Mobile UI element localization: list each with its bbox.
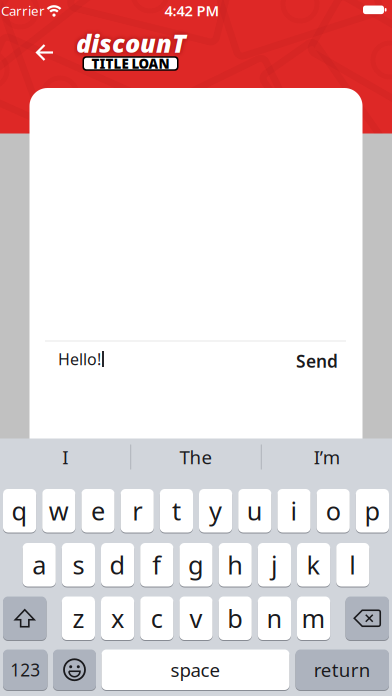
staticText: The <box>179 445 212 469</box>
staticText: k <box>307 548 321 581</box>
button[interactable]: n <box>258 596 291 640</box>
staticText: c <box>151 601 163 635</box>
staticText: m <box>302 601 326 635</box>
button[interactable]: e <box>81 489 115 532</box>
button[interactable]: v <box>179 596 213 640</box>
staticText: w <box>49 494 69 527</box>
button[interactable]: The <box>133 439 259 475</box>
staticText: I’m <box>314 445 340 469</box>
staticText: z <box>72 601 84 635</box>
button[interactable] <box>345 596 389 640</box>
staticText: TITLE LOAN <box>91 55 169 72</box>
staticText: 123 <box>10 658 40 681</box>
button[interactable]: Send <box>287 346 347 376</box>
staticText: t <box>172 494 181 527</box>
staticText: a <box>32 548 46 581</box>
staticText: u <box>247 494 263 527</box>
button[interactable] <box>53 649 96 690</box>
button[interactable]: o <box>317 489 350 532</box>
button[interactable]: f <box>140 543 173 586</box>
button[interactable]: space <box>101 649 289 690</box>
button[interactable]: h <box>219 543 252 586</box>
button[interactable]: k <box>297 543 330 586</box>
button[interactable] <box>3 596 46 640</box>
button[interactable]: u <box>238 489 271 532</box>
staticText: s <box>72 548 84 581</box>
staticText: Hello! <box>58 348 101 370</box>
staticText: b <box>227 601 243 635</box>
button[interactable]: d <box>101 543 134 586</box>
staticText: y <box>209 494 222 527</box>
button[interactable]: b <box>219 596 252 640</box>
button[interactable]: g <box>179 543 213 586</box>
staticText: v <box>189 601 202 635</box>
button[interactable]: p <box>356 489 389 532</box>
button[interactable] <box>35 44 55 60</box>
button[interactable]: i <box>277 489 311 532</box>
staticText: l <box>349 548 356 581</box>
button[interactable]: y <box>199 489 232 532</box>
staticText: i <box>290 494 297 527</box>
staticText: space <box>170 657 220 682</box>
button[interactable]: z <box>62 596 95 640</box>
button[interactable]: x <box>101 596 134 640</box>
staticText: q <box>12 494 28 527</box>
button[interactable]: l <box>336 543 369 586</box>
button[interactable]: I’m <box>264 439 390 475</box>
staticText: d <box>110 548 126 581</box>
button[interactable]: I <box>2 439 128 475</box>
staticText: o <box>326 494 341 527</box>
staticText: h <box>227 548 243 581</box>
staticText: Carrier <box>1 2 45 19</box>
button[interactable]: m <box>297 596 330 640</box>
staticText: e <box>91 494 105 527</box>
button[interactable]: c <box>140 596 173 640</box>
staticText: j <box>271 548 278 581</box>
staticText: I <box>62 445 68 469</box>
staticText: r <box>132 494 142 527</box>
staticText: f <box>152 548 161 581</box>
button[interactable]: a <box>23 543 56 586</box>
button[interactable]: s <box>62 543 95 586</box>
button[interactable]: discounT <box>51 24 211 80</box>
staticText: 4:42 PM <box>164 1 219 20</box>
button[interactable]: j <box>258 543 291 586</box>
staticText: n <box>266 601 282 635</box>
staticText: p <box>364 494 380 527</box>
button[interactable]: return <box>295 649 389 690</box>
staticText: Send <box>296 349 338 372</box>
staticText: return <box>314 657 371 682</box>
button[interactable]: t <box>160 489 193 532</box>
button[interactable]: q <box>3 489 36 532</box>
staticText: discounT <box>76 26 186 60</box>
staticText: x <box>111 601 124 635</box>
button[interactable]: w <box>42 489 75 532</box>
staticText: g <box>188 548 204 581</box>
button[interactable]: r <box>121 489 154 532</box>
button[interactable]: 123 <box>3 649 47 690</box>
